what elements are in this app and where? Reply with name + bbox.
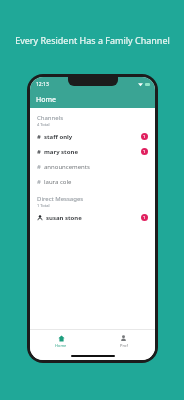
- button[interactable]: Prof: [92, 335, 155, 348]
- staticText: 12:13: [36, 81, 49, 88]
- button[interactable]: #: [30, 159, 155, 174]
- button[interactable]: Home: [30, 335, 92, 348]
- staticText: staff only: [44, 133, 73, 141]
- staticText: #: [37, 178, 41, 186]
- staticText: 1 Total: [37, 203, 50, 208]
- button[interactable]: susan stone: [30, 210, 155, 225]
- button[interactable]: Home: [30, 91, 155, 108]
- staticText: announcements: [44, 163, 90, 171]
- staticText: mary stone: [44, 148, 78, 156]
- staticText: #: [37, 163, 41, 171]
- staticText: 1: [143, 134, 146, 139]
- button[interactable]: #: [30, 174, 155, 189]
- staticText: 1: [143, 149, 146, 154]
- staticText: #: [37, 148, 41, 156]
- button[interactable]: #: [30, 129, 155, 144]
- staticText: Every Resident Has a Family Channel: [15, 34, 170, 46]
- staticText: susan stone: [46, 214, 82, 222]
- staticText: laura cole: [44, 178, 72, 186]
- staticText: Home: [55, 343, 67, 348]
- staticText: 1: [143, 215, 146, 220]
- staticText: Home: [36, 95, 56, 105]
- staticText: Channels: [37, 114, 64, 122]
- button[interactable]: #: [30, 144, 155, 159]
- staticText: Prof: [120, 343, 128, 348]
- staticText: 4 Total: [37, 122, 50, 127]
- staticText: Direct Messages: [37, 195, 84, 203]
- staticText: #: [37, 133, 41, 141]
